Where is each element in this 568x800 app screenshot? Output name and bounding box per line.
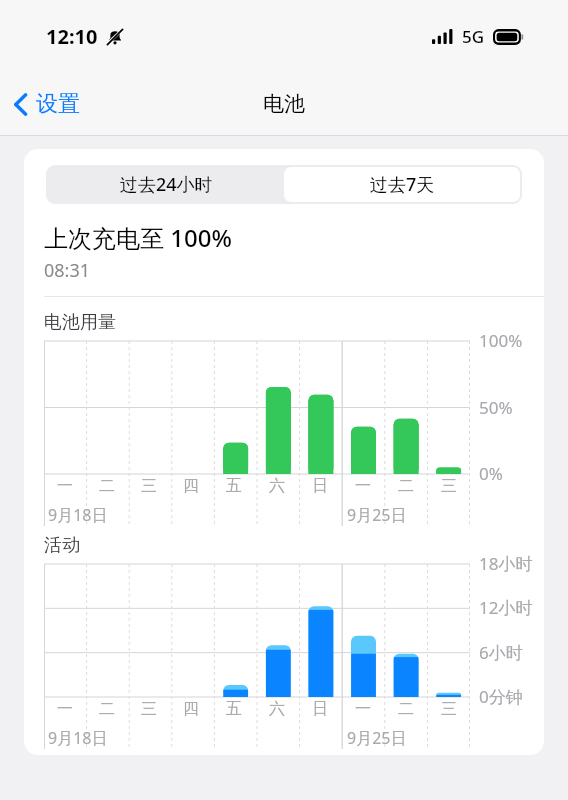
staticText: 50% bbox=[479, 396, 513, 419]
staticText: 5G bbox=[462, 25, 485, 48]
other: Silent mode bbox=[105, 27, 125, 47]
staticText: 日 bbox=[312, 476, 328, 496]
staticText: 二 bbox=[99, 699, 115, 719]
other: Signal bbox=[432, 29, 455, 44]
staticText: 08:31 bbox=[44, 258, 91, 283]
staticText: 上次充电至 100% bbox=[44, 221, 232, 254]
staticText: 五 bbox=[226, 699, 242, 719]
staticText: 设置 bbox=[36, 90, 80, 118]
staticText: 过去7天 bbox=[370, 172, 435, 197]
staticText: 9月25日 bbox=[347, 727, 407, 749]
staticText: 六 bbox=[269, 699, 285, 719]
staticText: 9月25日 bbox=[347, 504, 407, 526]
staticText: 二 bbox=[398, 476, 414, 496]
staticText: 三 bbox=[441, 476, 457, 496]
other: Battery bbox=[493, 29, 524, 45]
staticText: 一 bbox=[57, 476, 73, 496]
staticText: 18小时 bbox=[479, 552, 533, 575]
button[interactable]: 过去7天 bbox=[284, 167, 520, 202]
staticText: 0分钟 bbox=[479, 685, 523, 708]
staticText: 活动 bbox=[44, 534, 80, 557]
staticText: 9月18日 bbox=[48, 727, 108, 749]
staticText: 六 bbox=[269, 476, 285, 496]
staticText: 五 bbox=[226, 476, 242, 496]
staticText: 0% bbox=[479, 462, 503, 485]
staticText: 二 bbox=[398, 699, 414, 719]
staticText: 二 bbox=[99, 476, 115, 496]
staticText: 9月18日 bbox=[48, 504, 108, 526]
staticText: 12小时 bbox=[479, 596, 533, 619]
button[interactable]: 过去24小时 bbox=[48, 167, 284, 202]
staticText: 12:10 bbox=[46, 23, 98, 50]
staticText: 一 bbox=[57, 699, 73, 719]
staticText: 三 bbox=[141, 476, 157, 496]
staticText: 过去24小时 bbox=[120, 172, 213, 197]
staticText: 一 bbox=[355, 699, 371, 719]
staticText: 四 bbox=[183, 476, 199, 496]
staticText: 6小时 bbox=[479, 641, 523, 664]
staticText: 三 bbox=[141, 699, 157, 719]
staticText: 100% bbox=[479, 329, 523, 352]
staticText: 电池 bbox=[263, 91, 305, 117]
staticText: 日 bbox=[312, 699, 328, 719]
staticText: 四 bbox=[183, 699, 199, 719]
staticText: 一 bbox=[355, 476, 371, 496]
staticText: 电池用量 bbox=[44, 311, 116, 334]
staticText: 三 bbox=[441, 699, 457, 719]
button[interactable]: 设置 bbox=[0, 80, 94, 128]
